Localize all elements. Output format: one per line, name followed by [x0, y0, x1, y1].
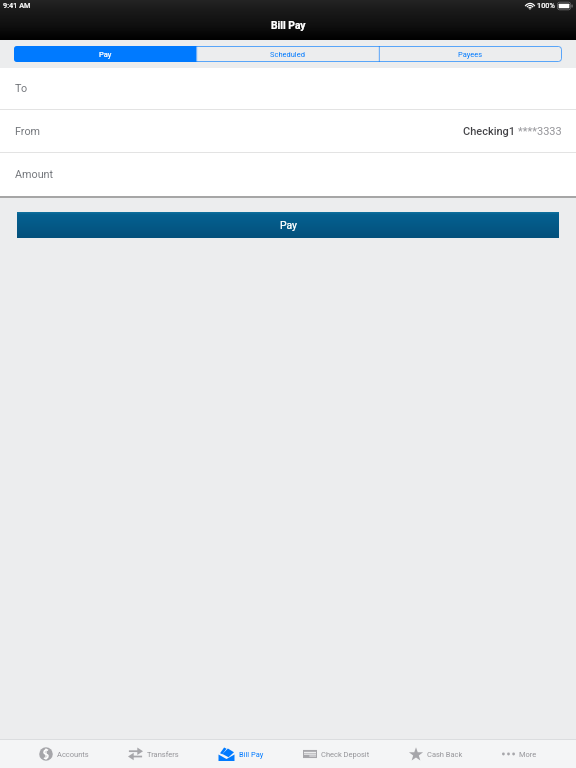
staticText: To	[15, 82, 28, 95]
button[interactable]: Scheduled	[196, 46, 379, 62]
button[interactable]: Pay	[14, 46, 196, 62]
staticText: Accounts	[57, 750, 89, 759]
button[interactable]: Payees	[379, 46, 562, 62]
staticText: Pay	[280, 219, 297, 231]
staticText: 9:41 AM	[3, 1, 31, 10]
staticText: From	[15, 125, 41, 138]
staticText: Bill Pay	[239, 750, 264, 759]
staticText: Payees	[458, 50, 483, 59]
staticText: Amount	[15, 168, 54, 181]
button[interactable]: Pay	[17, 212, 559, 238]
staticText: Cash Back	[427, 750, 463, 759]
staticText: ****3333	[518, 125, 562, 138]
staticText: Pay	[99, 50, 112, 59]
button[interactable]: From	[0, 110, 576, 152]
button[interactable]: Cash Back	[409, 740, 463, 768]
button[interactable]: Transfers	[128, 740, 179, 768]
button[interactable]: To	[0, 68, 576, 109]
button[interactable]: Accounts	[39, 740, 89, 768]
button[interactable]: More	[502, 740, 537, 768]
staticText: Scheduled	[270, 50, 305, 59]
staticText: 100%	[537, 1, 555, 10]
staticText: Check Deposit	[321, 750, 370, 759]
staticText: Checking1	[463, 125, 516, 138]
button[interactable]: Amount	[0, 153, 576, 196]
button[interactable]: Check Deposit	[303, 740, 370, 768]
staticText: Transfers	[147, 750, 179, 759]
button[interactable]: Bill Pay	[218, 740, 264, 768]
staticText: More	[519, 750, 537, 759]
staticText: Bill Pay	[271, 19, 306, 31]
